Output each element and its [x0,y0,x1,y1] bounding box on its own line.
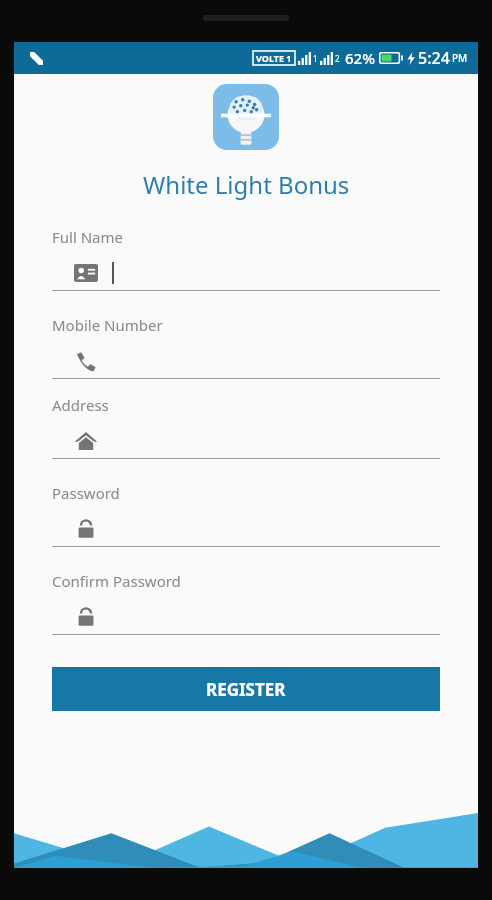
staticText: 1 [313,53,318,64]
button[interactable]: Address [52,395,440,459]
staticText: Confirm Password [52,571,181,591]
staticText: Address [52,395,109,415]
button[interactable]: Mobile Number [52,315,440,379]
button[interactable]: Password [52,483,440,547]
staticText: REGISTER [206,678,286,701]
staticText: Password [52,483,120,503]
staticText: White Light Bonus [143,168,350,201]
button[interactable]: REGISTER [52,667,440,711]
button[interactable]: White Light Bonus app icon [213,84,279,150]
staticText: 5:24 [418,47,450,69]
button[interactable]: Confirm Password [52,571,440,635]
staticText: 2 [335,53,340,64]
staticText: 62% [345,48,375,68]
staticText: PM [452,51,468,65]
button[interactable]: Full Name [52,227,440,291]
staticText: Mobile Number [52,315,163,335]
staticText: Full Name [52,227,123,247]
staticText: VOLTE 1 [256,52,292,64]
